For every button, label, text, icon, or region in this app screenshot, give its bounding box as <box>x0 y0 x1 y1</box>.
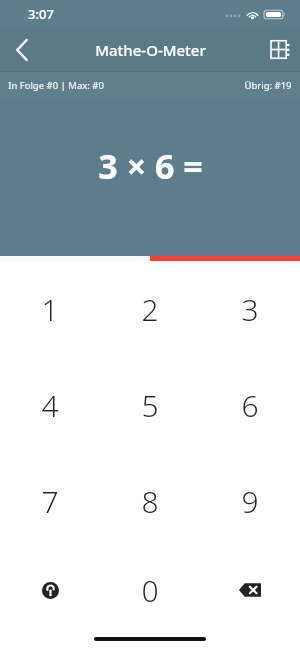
staticText: 5 <box>141 385 159 426</box>
button[interactable]: 9 <box>200 453 300 549</box>
staticText: 3 <box>241 289 259 330</box>
staticText: 3 × 6 = <box>98 143 203 189</box>
staticText: 7 <box>41 481 59 522</box>
staticText: 3:07 <box>28 5 54 23</box>
staticText: Mathe-O-Meter <box>95 40 206 60</box>
staticText: Übrig: #19 <box>244 79 292 92</box>
staticText: 6 <box>241 385 259 426</box>
button[interactable]: 5 <box>100 357 200 453</box>
button[interactable]: 3 <box>200 261 300 357</box>
staticText: 1 <box>41 289 59 330</box>
button[interactable]: 6 <box>200 357 300 453</box>
staticText: 8 <box>141 481 159 522</box>
button[interactable]: Back <box>0 28 44 71</box>
button[interactable]: 2 <box>100 261 200 357</box>
button[interactable]: 8 <box>100 453 200 549</box>
button[interactable]: 7 <box>0 453 100 549</box>
staticText: 2 <box>141 289 159 330</box>
button[interactable]: Backspace <box>200 549 300 631</box>
staticText: 0 <box>141 570 159 611</box>
button[interactable]: 1 <box>0 261 100 357</box>
staticText: 4 <box>41 385 59 426</box>
staticText: In Folge #0 | Max: #0 <box>8 79 104 92</box>
button[interactable]: 0 <box>100 549 200 631</box>
staticText: 9 <box>241 481 259 522</box>
button[interactable]: Help <box>0 549 100 631</box>
button[interactable]: Statistics <box>260 28 300 71</box>
button[interactable]: 4 <box>0 357 100 453</box>
